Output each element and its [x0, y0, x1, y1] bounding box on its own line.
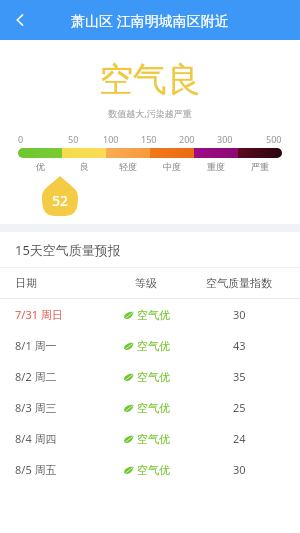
staticText: 25: [233, 400, 246, 415]
staticText: 500: [266, 133, 282, 145]
staticText: 35: [233, 369, 246, 384]
button[interactable]: 7/31 周日: [0, 299, 300, 330]
staticText: 8/1 周一: [15, 338, 57, 353]
staticText: 空气优: [137, 401, 170, 415]
staticText: 空气优: [137, 339, 170, 353]
staticText: 日期: [15, 276, 37, 290]
staticText: 优: [36, 161, 45, 172]
staticText: 良: [80, 161, 89, 172]
staticText: 空气质量指数: [206, 276, 272, 290]
button[interactable]: 8/5 周五: [0, 454, 300, 485]
button[interactable]: 8/1 周一: [0, 330, 300, 361]
staticText: 50: [68, 133, 79, 145]
staticText: 重度: [207, 161, 225, 172]
button[interactable]: 8/2 周二: [0, 361, 300, 392]
staticText: 200: [179, 133, 195, 145]
staticText: 8/4 周四: [15, 431, 57, 446]
staticText: 轻度: [119, 161, 137, 172]
staticText: 空气优: [137, 463, 170, 477]
staticText: 数值越大,污染越严重: [0, 107, 300, 119]
staticText: 0: [18, 133, 24, 145]
staticText: 24: [233, 431, 246, 446]
button[interactable]: 8/4 周四: [0, 423, 300, 454]
staticText: 空气优: [137, 308, 170, 322]
staticText: 8/5 周五: [15, 462, 57, 477]
staticText: 300: [217, 133, 233, 145]
staticText: 7/31 周日: [15, 307, 63, 322]
staticText: 43: [233, 338, 246, 353]
staticText: 30: [233, 307, 246, 322]
staticText: 空气优: [137, 370, 170, 384]
staticText: 严重: [251, 161, 269, 172]
staticText: 100: [103, 133, 119, 145]
staticText: 30: [233, 462, 246, 477]
staticText: 萧山区 江南明城南区附近: [71, 11, 229, 30]
staticText: 52: [52, 191, 69, 210]
staticText: 空气良: [0, 58, 300, 101]
staticText: 15天空气质量预报: [15, 241, 121, 259]
staticText: 8/2 周二: [15, 369, 57, 384]
staticText: 150: [141, 133, 157, 145]
staticText: 等级: [135, 276, 157, 290]
button[interactable]: 8/3 周三: [0, 392, 300, 423]
staticText: 空气优: [137, 432, 170, 446]
staticText: 中度: [163, 161, 181, 172]
button[interactable]: Back: [0, 0, 40, 40]
staticText: 8/3 周三: [15, 400, 57, 415]
